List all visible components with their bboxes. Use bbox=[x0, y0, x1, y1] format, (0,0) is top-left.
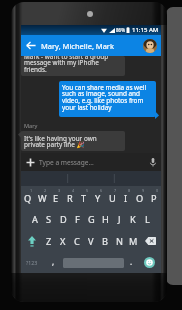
button[interactable]: F bbox=[70, 208, 84, 230]
staticText: M bbox=[129, 235, 138, 248]
button[interactable]: ?123 bbox=[21, 252, 43, 273]
staticText: U bbox=[109, 192, 116, 205]
staticText: Z bbox=[46, 235, 52, 248]
button[interactable]: N bbox=[112, 230, 126, 252]
staticText: 9 bbox=[142, 188, 145, 193]
button[interactable]: Comma bbox=[43, 252, 63, 273]
button[interactable]: 8 bbox=[119, 186, 133, 208]
button[interactable]: J bbox=[112, 208, 126, 230]
staticText: Mary, Michelle, Mark bbox=[41, 41, 114, 51]
staticText: Mary bbox=[24, 122, 38, 130]
staticText: C bbox=[74, 235, 80, 248]
staticText: 6 bbox=[100, 188, 103, 193]
staticText: 8 bbox=[128, 188, 131, 193]
staticText: L bbox=[145, 213, 150, 226]
staticText: T bbox=[81, 192, 87, 205]
button[interactable]: 1 bbox=[21, 186, 35, 208]
staticText: H bbox=[102, 213, 109, 226]
staticText: 86% bbox=[116, 27, 125, 33]
button[interactable]: Voice input bbox=[145, 153, 161, 171]
button[interactable]: 4 bbox=[63, 186, 77, 208]
button[interactable]: 9 bbox=[133, 186, 147, 208]
staticText: , bbox=[52, 256, 55, 267]
staticText: W bbox=[38, 192, 47, 205]
button[interactable]: S bbox=[42, 208, 56, 230]
staticText: Y bbox=[95, 192, 101, 205]
button[interactable]: Backspace bbox=[140, 230, 161, 252]
staticText: Q bbox=[24, 192, 32, 205]
button[interactable]: Attach bbox=[21, 153, 39, 171]
staticText: You can share media as well such as imag… bbox=[62, 83, 153, 112]
staticText: X bbox=[60, 235, 66, 248]
button[interactable]: 0 bbox=[147, 186, 161, 208]
button[interactable]: 7 bbox=[105, 186, 119, 208]
staticText: D bbox=[60, 213, 67, 226]
button[interactable]: 5 bbox=[77, 186, 91, 208]
staticText: S bbox=[46, 213, 52, 226]
button[interactable]: 6 bbox=[91, 186, 105, 208]
button[interactable]: A bbox=[28, 208, 42, 230]
staticText: 7 bbox=[114, 188, 117, 193]
button[interactable]: L bbox=[140, 208, 154, 230]
button[interactable]: X bbox=[56, 230, 70, 252]
button[interactable]: D bbox=[56, 208, 70, 230]
button[interactable]: 3 bbox=[49, 186, 63, 208]
button[interactable]: V bbox=[84, 230, 98, 252]
button[interactable]: B bbox=[98, 230, 112, 252]
button[interactable]: Emoji bbox=[138, 252, 161, 273]
staticText: K bbox=[130, 213, 136, 226]
staticText: F bbox=[75, 213, 80, 226]
staticText: 0 bbox=[156, 188, 159, 193]
staticText: Type a message... bbox=[39, 158, 94, 167]
staticText: 1 bbox=[30, 188, 33, 193]
staticText: G bbox=[88, 213, 95, 226]
button[interactable]: C bbox=[70, 230, 84, 252]
staticText: 3 bbox=[58, 188, 61, 193]
button[interactable]: G bbox=[84, 208, 98, 230]
staticText: 4 bbox=[72, 188, 75, 193]
button[interactable]: Back bbox=[21, 35, 41, 56]
button[interactable]: Z bbox=[42, 230, 56, 252]
staticText: . bbox=[130, 256, 133, 267]
staticText: I bbox=[124, 192, 128, 205]
staticText: ?123 bbox=[26, 259, 38, 266]
button[interactable]: Shift bbox=[21, 230, 42, 252]
staticText: Mark - want to start a group message wit… bbox=[24, 56, 122, 72]
staticText: R bbox=[67, 192, 73, 205]
button[interactable]: Period bbox=[124, 252, 138, 273]
button[interactable]: K bbox=[126, 208, 140, 230]
button[interactable]: Contacts bbox=[143, 39, 157, 53]
staticText: It's like having your own private party … bbox=[24, 134, 97, 149]
staticText: E bbox=[53, 192, 59, 205]
button[interactable]: H bbox=[98, 208, 112, 230]
button[interactable]: 2 bbox=[35, 186, 49, 208]
staticText: A bbox=[32, 213, 38, 226]
staticText: B bbox=[102, 235, 108, 248]
staticText: O bbox=[136, 192, 144, 205]
staticText: 11:15 AM bbox=[132, 26, 159, 34]
button[interactable]: M bbox=[126, 230, 140, 252]
staticText: N bbox=[116, 235, 123, 248]
staticText: J bbox=[118, 213, 121, 226]
staticText: V bbox=[88, 235, 94, 248]
staticText: P bbox=[151, 192, 157, 205]
staticText: 2 bbox=[44, 188, 47, 193]
staticText: 5 bbox=[86, 188, 89, 193]
